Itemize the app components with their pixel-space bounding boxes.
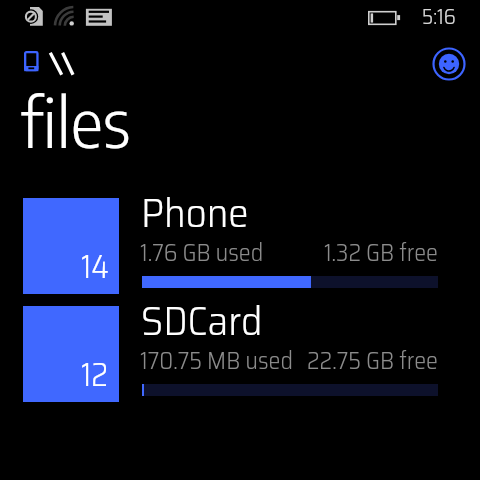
staticText: 12	[81, 350, 109, 400]
button[interactable]: 14	[23, 198, 438, 294]
staticText: 1.76 GB used	[140, 234, 264, 272]
button[interactable]: 12	[23, 306, 438, 402]
button[interactable]: Account	[431, 46, 467, 82]
staticText: 22.75 GB free	[23, 342, 438, 380]
staticText: 14	[81, 242, 110, 292]
staticText: 170.75 MB used	[140, 342, 294, 380]
button[interactable]: Phone storage path	[20, 46, 82, 78]
staticText: Phone	[141, 180, 249, 245]
staticText: 5:16	[422, 0, 456, 33]
staticText: 1.32 GB free	[23, 234, 438, 272]
staticText: SDCard	[141, 288, 263, 353]
staticText: files	[21, 78, 131, 163]
